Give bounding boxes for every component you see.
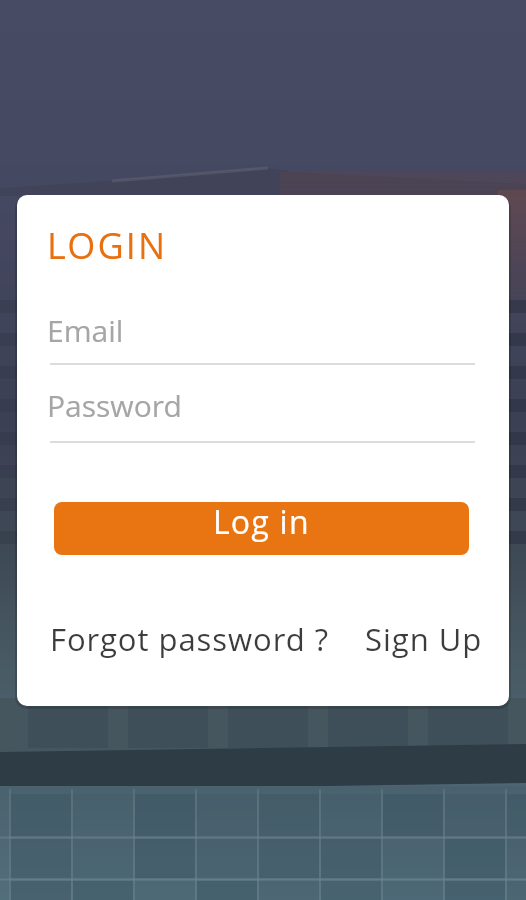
staticText: Log in [213,502,310,544]
staticText: Email [47,310,124,351]
button[interactable]: Log in [54,502,469,555]
button[interactable]: Email [50,298,475,368]
staticText: LOGIN [47,221,168,270]
button[interactable]: Password [50,379,475,447]
staticText: Sign Up [365,618,483,658]
button[interactable]: Forgot password ? [50,618,352,658]
staticText: Forgot password ? [50,618,329,658]
staticText: Password [47,385,182,426]
button[interactable]: Sign Up [365,618,485,658]
